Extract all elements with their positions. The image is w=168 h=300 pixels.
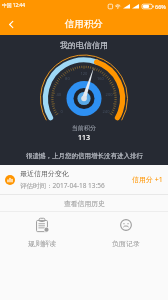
staticText: 很遗憾，上月您的信用增长没有进入排行 (26, 152, 143, 160)
button[interactable]: 最近信用分变化 (0, 165, 168, 194)
button[interactable]: 规则解读 (0, 212, 84, 256)
button[interactable]: 负面记录 (84, 212, 168, 256)
staticText: 我的电信信用 (60, 40, 108, 50)
button[interactable]: 查看信用历史 (0, 195, 168, 211)
staticText: 评估时间：2017-04-18 13:56 (20, 181, 105, 190)
staticText: 113 (78, 133, 91, 143)
staticText: 中国 12:44 (2, 2, 26, 9)
staticText: 信用积分 (65, 18, 103, 30)
button[interactable]: Back (0, 13, 22, 35)
staticText: 信用分 +1 (132, 175, 163, 185)
staticText: 规则解读 (28, 239, 56, 248)
staticText: 当前积分 (72, 124, 96, 132)
staticText: 66% (155, 3, 166, 10)
staticText: 查看信用历史 (64, 199, 105, 208)
staticText: 负面记录 (112, 239, 140, 248)
staticText: 最近信用分变化 (20, 169, 69, 178)
